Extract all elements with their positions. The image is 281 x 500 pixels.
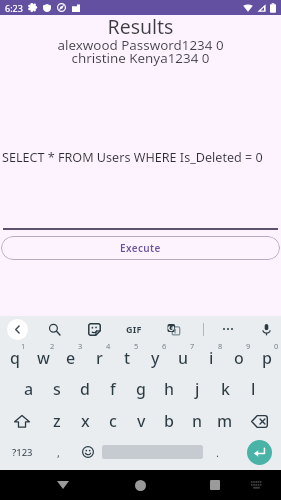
- staticText: SELECT * FROM Users WHERE Is_Deleted = 0: [2, 149, 263, 166]
- button[interactable]: Switch keyboard: [246, 475, 266, 495]
- staticText: 6:23: [5, 2, 23, 14]
- staticText: z: [53, 410, 61, 432]
- button[interactable]: Emoji: [73, 437, 102, 467]
- button[interactable]: b: [155, 406, 183, 435]
- staticText: h: [164, 378, 175, 400]
- staticText: f: [110, 378, 116, 400]
- staticText: .: [216, 445, 219, 460]
- staticText: ,: [57, 445, 60, 460]
- staticText: r: [96, 347, 103, 369]
- button[interactable]: Search: [43, 318, 65, 340]
- staticText: b: [164, 410, 174, 432]
- button[interactable]: Collapse keyboard toolbar: [7, 319, 28, 340]
- button[interactable]: More options: [217, 318, 239, 340]
- button[interactable]: f: [99, 373, 127, 404]
- staticText: s: [53, 378, 61, 400]
- button[interactable]: Backspace: [239, 406, 281, 435]
- staticText: Execute: [120, 241, 161, 255]
- staticText: ?123: [12, 446, 33, 459]
- button[interactable]: h: [155, 373, 183, 404]
- button[interactable]: a: [15, 373, 43, 404]
- button[interactable]: t: [113, 342, 141, 373]
- staticText: 6: [162, 341, 167, 351]
- button[interactable]: k: [211, 373, 239, 404]
- button[interactable]: y: [141, 342, 169, 373]
- button[interactable]: w: [29, 342, 57, 373]
- staticText: x: [81, 410, 90, 432]
- button[interactable]: Stickers: [83, 318, 105, 340]
- staticText: 0: [274, 341, 279, 351]
- staticText: 1: [21, 341, 26, 351]
- staticText: p: [262, 347, 272, 369]
- button[interactable]: o: [225, 342, 253, 373]
- staticText: 3: [78, 341, 83, 351]
- button[interactable]: m: [211, 406, 239, 435]
- staticText: n: [192, 410, 203, 432]
- button[interactable]: c: [99, 406, 127, 435]
- staticText: 2: [50, 341, 55, 351]
- staticText: u: [178, 347, 189, 369]
- button[interactable]: d: [71, 373, 99, 404]
- staticText: w: [37, 347, 50, 369]
- button[interactable]: Shift: [0, 406, 43, 435]
- staticText: j: [195, 378, 200, 400]
- button[interactable]: i: [197, 342, 225, 373]
- staticText: i: [209, 347, 214, 369]
- staticText: 8: [218, 341, 223, 351]
- staticText: 4: [106, 341, 111, 351]
- staticText: d: [80, 378, 90, 400]
- button[interactable]: q: [0, 342, 29, 373]
- button[interactable]: Recent apps: [203, 473, 227, 497]
- staticText: o: [234, 347, 244, 369]
- button[interactable]: r: [85, 342, 113, 373]
- staticText: v: [137, 410, 146, 432]
- staticText: Results: [0, 13, 281, 40]
- staticText: t: [124, 347, 131, 369]
- staticText: GIF: [126, 323, 142, 335]
- button[interactable]: j: [183, 373, 211, 404]
- staticText: 7: [190, 341, 195, 351]
- button[interactable]: e: [57, 342, 85, 373]
- button[interactable]: s: [43, 373, 71, 404]
- button[interactable]: Translate: [162, 318, 184, 340]
- staticText: 5: [134, 341, 139, 351]
- button[interactable]: Home: [128, 473, 152, 497]
- button[interactable]: Voice input: [255, 318, 277, 340]
- button[interactable]: n: [183, 406, 211, 435]
- button[interactable]: u: [169, 342, 197, 373]
- button[interactable]: Back: [51, 473, 75, 497]
- button[interactable]: ,: [44, 437, 73, 467]
- staticText: k: [221, 378, 230, 400]
- button[interactable]: Enter: [247, 440, 272, 465]
- button[interactable]: g: [127, 373, 155, 404]
- button[interactable]: GIF: [122, 316, 146, 342]
- staticText: e: [66, 347, 76, 369]
- staticText: 9: [246, 341, 251, 351]
- button[interactable]: z: [43, 406, 71, 435]
- button[interactable]: ?123: [0, 437, 44, 467]
- staticText: l: [251, 378, 256, 400]
- staticText: g: [136, 378, 146, 400]
- button[interactable]: x: [71, 406, 99, 435]
- button[interactable]: Execute: [1, 236, 280, 260]
- button[interactable]: p: [253, 342, 281, 373]
- staticText: a: [24, 378, 34, 400]
- staticText: m: [217, 410, 233, 432]
- button[interactable]: v: [127, 406, 155, 435]
- button[interactable]: l: [239, 373, 267, 404]
- staticText: y: [151, 347, 160, 369]
- staticText: alexwood Password1234 0: [0, 36, 281, 54]
- button[interactable]: .: [203, 437, 232, 467]
- staticText: q: [10, 347, 20, 369]
- staticText: christine Kenya1234 0: [0, 49, 281, 67]
- staticText: c: [109, 410, 117, 432]
